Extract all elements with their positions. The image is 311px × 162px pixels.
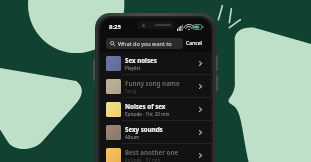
- staticText: Cancel: [186, 40, 202, 47]
- button[interactable]: Sex noises: [100, 52, 211, 74]
- staticText: Episode · 57 min: [125, 157, 161, 162]
- button[interactable]: Sexy sounds: [100, 121, 211, 143]
- other: Open: [196, 59, 205, 68]
- staticText: Sex noises: [125, 56, 157, 64]
- button[interactable]: Funny song name: [100, 75, 211, 97]
- staticText: What do you want to listen to?: [118, 40, 179, 47]
- button[interactable]: Noises of sex: [100, 98, 211, 120]
- staticText: 8:25: [109, 23, 121, 31]
- staticText: Best another one: [125, 148, 179, 156]
- other: Open: [196, 151, 205, 160]
- other: Open: [196, 105, 205, 114]
- staticText: Sexy sounds: [125, 125, 163, 133]
- staticText: Playlist: [125, 65, 141, 71]
- staticText: Album: [125, 134, 140, 140]
- button[interactable]: What do you want to listen to?: [106, 38, 183, 49]
- other: Open: [196, 128, 205, 137]
- staticText: Song: [125, 88, 136, 94]
- other: Open: [196, 82, 205, 91]
- button[interactable]: Best another one: [100, 144, 211, 162]
- staticText: Episode · 1hr, 20 min: [125, 111, 170, 117]
- staticText: Noises of sex: [125, 102, 166, 110]
- button[interactable]: Cancel: [183, 38, 205, 49]
- staticText: Funny song name: [125, 79, 180, 87]
